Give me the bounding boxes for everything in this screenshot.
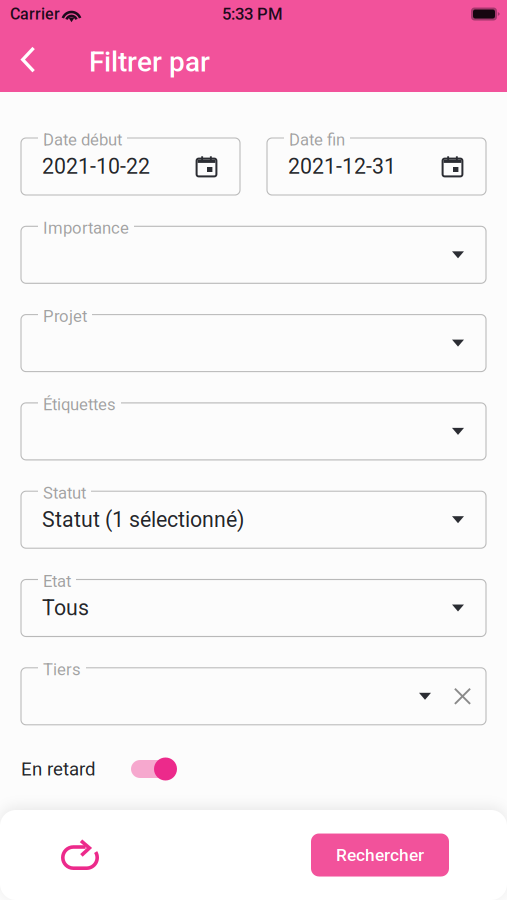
staticText: Tiers — [43, 660, 81, 679]
button[interactable]: En retard — [128, 757, 180, 781]
staticText: Date début — [43, 130, 122, 149]
staticText: Statut (1 sélectionné) — [42, 507, 244, 532]
staticText: Tous — [42, 595, 89, 620]
staticText: Projet — [43, 307, 87, 326]
staticText: 2021-10-22 — [42, 154, 150, 179]
button[interactable]: Retour — [4, 32, 52, 92]
staticText: 2021-12-31 — [288, 154, 396, 179]
button[interactable]: Rechercher — [311, 833, 449, 876]
staticText: 5:33 PM — [222, 4, 283, 24]
staticText: Date fin — [289, 130, 345, 149]
button[interactable]: Réinitialiser — [49, 824, 111, 886]
staticText: Carrier — [10, 5, 60, 23]
staticText: Statut — [43, 483, 86, 503]
staticText: Étiquettes — [43, 395, 116, 414]
staticText: Rechercher — [336, 845, 424, 865]
staticText: Etat — [43, 571, 71, 591]
staticText: En retard — [21, 758, 96, 780]
staticText: Filtrer par — [89, 46, 210, 78]
staticText: Importance — [43, 218, 129, 238]
